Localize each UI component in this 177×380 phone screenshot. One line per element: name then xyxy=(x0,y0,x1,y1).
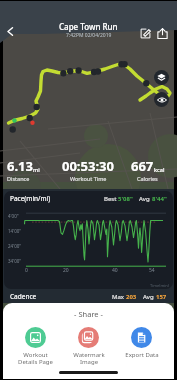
staticText: 40 xyxy=(112,267,118,274)
button[interactable]: Toggle map visibility xyxy=(154,92,169,107)
staticText: Cape Town Run xyxy=(59,21,118,32)
staticText: 0 xyxy=(25,267,28,274)
staticText: - Share - xyxy=(3,309,174,319)
staticText: Avg xyxy=(143,293,156,301)
staticText: 4'00" xyxy=(8,213,19,219)
staticText: Distance xyxy=(7,175,30,182)
staticText: 54 xyxy=(149,267,155,274)
staticText: 00:53:30 xyxy=(62,157,114,175)
staticText: 24'00" xyxy=(8,243,22,249)
staticText: Workout Time xyxy=(70,175,107,182)
button[interactable]: Back xyxy=(1,22,20,41)
staticText: Avg xyxy=(139,195,152,203)
button[interactable]: Edit xyxy=(137,25,154,42)
staticText: 5'08" xyxy=(118,195,133,203)
staticText: 34'00" xyxy=(8,258,22,264)
staticText: Pace(min/mi) xyxy=(10,194,51,203)
staticText: 667 xyxy=(131,157,154,175)
staticText: Time(min) xyxy=(150,283,169,288)
staticText: 6.13 xyxy=(7,157,33,175)
staticText: Export Data xyxy=(125,351,159,359)
staticText: 20 xyxy=(63,267,69,274)
staticText: 157 xyxy=(156,293,167,301)
staticText: 14'00" xyxy=(8,228,22,234)
button[interactable]: Workout Details Page xyxy=(9,327,62,366)
staticText: Best xyxy=(104,195,118,203)
staticText: Max xyxy=(112,293,126,301)
button[interactable]: Share xyxy=(154,25,171,42)
staticText: Cadence xyxy=(10,292,37,301)
staticText: 8'44" xyxy=(152,195,167,203)
staticText: Calories xyxy=(137,175,158,182)
button[interactable]: Export Data xyxy=(115,327,168,359)
staticText: Workout Details Page xyxy=(18,351,53,366)
staticText: 203 xyxy=(126,293,137,301)
button[interactable]: Watermark Image xyxy=(62,327,115,366)
button[interactable]: Map layers xyxy=(154,70,169,85)
staticText: 7:42PM 02/04/2019 xyxy=(66,32,112,39)
staticText: Watermark Image xyxy=(73,351,105,366)
staticText: kcal xyxy=(154,166,165,173)
staticText: mi xyxy=(33,166,40,173)
